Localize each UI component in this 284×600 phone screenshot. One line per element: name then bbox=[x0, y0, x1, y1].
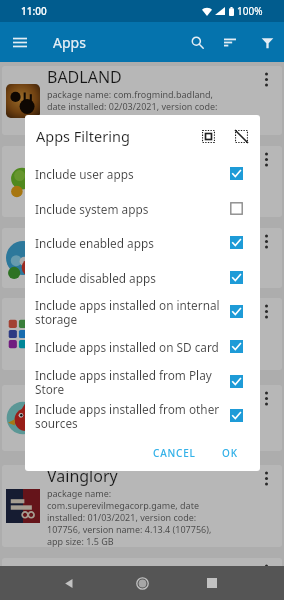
staticText: package name: com.rovio.angrybirds, date bbox=[47, 407, 228, 419]
staticText: 217045, version name: 3.2.0.45, app size… bbox=[47, 112, 220, 124]
staticText: 11:00 bbox=[21, 4, 47, 18]
button[interactable]: Vainglory bbox=[2, 465, 282, 547]
staticText: package name: com.example.appmanager, bbox=[47, 320, 229, 332]
staticText: 100% bbox=[237, 4, 263, 18]
button[interactable]: Select all bbox=[195, 123, 221, 149]
button[interactable]: Back bbox=[57, 571, 81, 595]
staticText: Include user apps bbox=[35, 166, 226, 182]
staticText: date installed: 01/03/2021, version code… bbox=[47, 332, 218, 344]
staticText: 34201, version name: 29.258, app size: 1… bbox=[47, 344, 228, 356]
staticText: Angry Birds 2 bbox=[47, 228, 148, 250]
staticText: date installed: 01/03/2021, version code… bbox=[47, 180, 218, 192]
button[interactable]: Include enabled apps bbox=[25, 225, 260, 260]
staticText: Include enabled apps bbox=[35, 235, 226, 251]
staticText: Apps bbox=[53, 33, 86, 52]
button[interactable]: Include apps installed from other source… bbox=[25, 398, 260, 433]
button[interactable]: CANCEL bbox=[147, 441, 202, 465]
button[interactable]: Include apps installed on internal stora… bbox=[25, 294, 260, 329]
button[interactable]: App Manager bbox=[2, 298, 282, 370]
staticText: installed: 01/03/2021, version code: 218… bbox=[47, 262, 222, 274]
button[interactable]: Include system apps bbox=[25, 191, 260, 226]
staticText: Include apps installed from Play Store bbox=[35, 367, 226, 397]
staticText: installed: 01/03/2021, version code: 801… bbox=[47, 419, 222, 431]
staticText: package name: com.rovio.baba, date bbox=[47, 250, 203, 262]
button[interactable]: Recent apps bbox=[200, 571, 224, 595]
staticText: Include disabled apps bbox=[35, 270, 226, 286]
staticText: 96.3 MB bbox=[47, 124, 82, 135]
staticText: installed: 01/03/2021, version code: bbox=[47, 511, 197, 523]
staticText: Include apps installed from other source… bbox=[35, 401, 226, 431]
button[interactable]: Filter bbox=[253, 28, 281, 56]
staticText: CANCEL bbox=[153, 446, 196, 460]
staticText: app size: 178 MB bbox=[47, 274, 118, 286]
button[interactable]: OK bbox=[216, 441, 244, 465]
staticText: Include apps installed on SD card bbox=[35, 339, 226, 355]
button[interactable]: Include disabled apps bbox=[25, 260, 260, 295]
staticText: app size: 1.5 GB bbox=[47, 535, 114, 547]
staticText: Include apps installed on internal stora… bbox=[35, 297, 226, 327]
button[interactable]: BADLAND bbox=[2, 66, 282, 135]
button[interactable]: Open navigation drawer bbox=[8, 30, 32, 54]
staticText: BADLAND bbox=[47, 66, 122, 88]
button[interactable]: Cut the Rope 2 bbox=[2, 146, 282, 217]
button[interactable]: Search bbox=[183, 28, 211, 56]
staticText: App Manager bbox=[47, 298, 149, 320]
staticText: com.superevilmegacorp.game, date bbox=[47, 499, 199, 511]
staticText: Include system apps bbox=[35, 201, 226, 217]
staticText: package name: com.frogmind.badland, bbox=[47, 88, 214, 100]
staticText: MB bbox=[47, 204, 62, 216]
button[interactable]: Include apps installed from Play Store bbox=[25, 364, 260, 399]
staticText: Vainglory bbox=[47, 465, 118, 487]
staticText: Angry Birds bbox=[47, 385, 135, 407]
staticText: 107756, version name: 4.13.4 (107756), bbox=[47, 523, 212, 535]
staticText: date installed: 02/03/2021, version code… bbox=[47, 100, 218, 112]
staticText: package name: com.zeptolab.ctr2.f2p.goog… bbox=[47, 168, 240, 180]
staticText: Apps Filtering bbox=[36, 126, 130, 146]
button[interactable] bbox=[2, 558, 282, 600]
button[interactable]: Include apps installed on SD card bbox=[25, 329, 260, 364]
staticText: package name: bbox=[47, 487, 112, 499]
button[interactable]: Angry Birds bbox=[2, 385, 282, 451]
button[interactable]: Deselect all bbox=[228, 123, 254, 149]
staticText: OK bbox=[222, 446, 238, 460]
button[interactable]: Sort bbox=[216, 28, 244, 56]
button[interactable]: Angry Birds 2 bbox=[2, 228, 282, 288]
button[interactable]: Home bbox=[130, 571, 154, 595]
button[interactable]: Include user apps bbox=[25, 156, 260, 191]
